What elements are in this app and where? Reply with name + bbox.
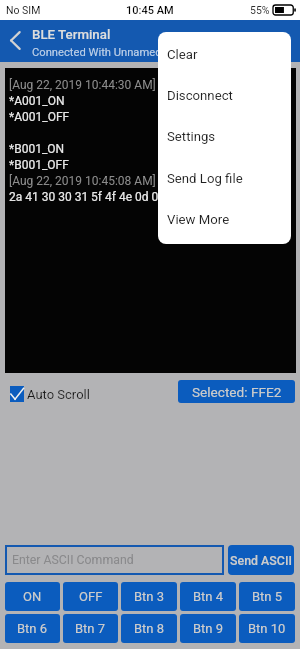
button[interactable]: Settings — [158, 118, 291, 154]
staticText: No SIM — [6, 4, 41, 16]
staticText: *B001_OFF — [9, 158, 69, 172]
staticText: *B001_ON — [9, 142, 65, 156]
staticText: Btn 9 — [193, 621, 224, 636]
staticText: OFF — [79, 589, 103, 604]
staticText: View More — [167, 212, 230, 227]
staticText: Btn 3 — [134, 589, 165, 604]
button[interactable]: Send Log file — [158, 160, 291, 196]
button[interactable]: Btn 7 — [63, 614, 118, 643]
staticText: Disconnect — [167, 88, 233, 103]
button[interactable]: ON — [5, 582, 60, 611]
button[interactable]: Btn 4 — [180, 582, 236, 611]
staticText: Btn 5 — [252, 589, 283, 604]
staticText: 10:45 AM — [126, 4, 174, 17]
button[interactable]: Clear — [158, 36, 291, 72]
button[interactable]: Selected: FFE2 — [178, 380, 295, 403]
button[interactable]: Send ASCII — [228, 545, 294, 575]
staticText: Btn 7 — [75, 621, 106, 636]
button[interactable]: Enter ASCII Command — [5, 545, 224, 575]
button[interactable]: OFF — [63, 582, 118, 611]
button[interactable]: Auto Scroll — [10, 386, 90, 402]
button[interactable]: Btn 10 — [239, 614, 295, 643]
staticText: Btn 8 — [134, 621, 165, 636]
button[interactable]: Back — [9, 31, 22, 50]
staticText: Btn 10 — [248, 621, 286, 636]
staticText: Connected With Unnamed — [32, 46, 162, 59]
staticText: Btn 4 — [193, 589, 224, 604]
staticText: *A001_ON — [9, 94, 65, 108]
staticText: Auto Scroll — [27, 387, 90, 402]
button[interactable]: Btn 6 — [5, 614, 60, 643]
staticText: Selected: FFE2 — [192, 384, 282, 400]
staticText: Settings — [167, 129, 216, 144]
button[interactable]: View More — [158, 201, 291, 237]
staticText: Btn 6 — [17, 621, 48, 636]
staticText: [Aug 22, 2019 10:45:08 AM] — [9, 174, 156, 188]
button[interactable]: Btn 3 — [121, 582, 177, 611]
button[interactable]: Disconnect — [158, 77, 291, 113]
staticText: BLE Terminal — [32, 27, 111, 43]
staticText: *A001_OFF — [9, 110, 70, 124]
staticText: Send ASCII — [230, 553, 292, 568]
staticText: 2a 41 30 30 31 5f 4f 4e 0d 0a — [9, 190, 165, 204]
staticText: 55% — [250, 4, 270, 16]
staticText: Enter ASCII Command — [12, 553, 134, 567]
staticText: Send Log file — [167, 171, 243, 186]
staticText: [Aug 22, 2019 10:44:30 AM] — [9, 78, 156, 92]
staticText: Clear — [167, 47, 198, 62]
button[interactable]: Btn 9 — [180, 614, 236, 643]
button[interactable]: Btn 5 — [239, 582, 295, 611]
button[interactable]: Btn 8 — [121, 614, 177, 643]
staticText: ON — [23, 589, 42, 604]
